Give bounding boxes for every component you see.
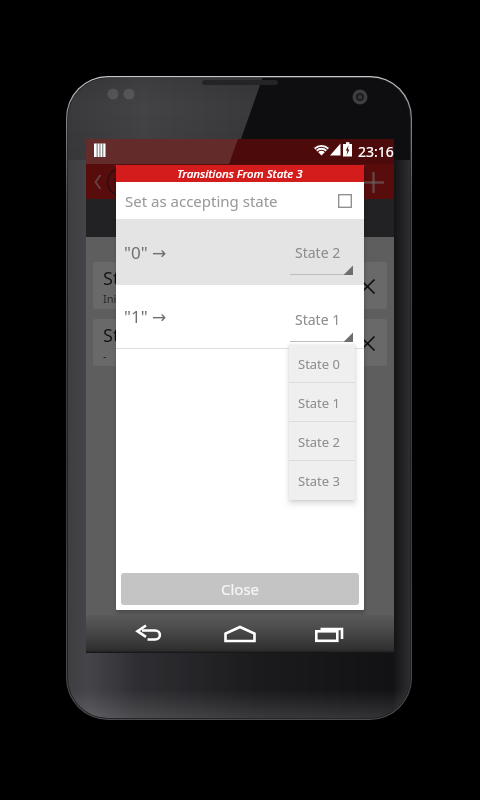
staticText: State 2 [298,433,340,451]
button[interactable]: State 1 [289,383,355,422]
staticText: 23:16 [358,142,394,161]
button[interactable]: State 3 [289,461,355,500]
button[interactable]: Set as accepting state [116,182,364,219]
button[interactable]: Back [91,167,105,197]
staticText: State 0 [103,266,162,291]
button[interactable]: Delete state [347,266,387,306]
staticText: State 1 [298,394,340,412]
button[interactable]: Recent apps [308,615,352,653]
button[interactable]: Back [128,615,172,653]
staticText: Transitions From State 3 [177,166,303,182]
staticText: "1" → [124,305,167,328]
button[interactable]: Close [121,573,359,605]
staticText: "0" → [124,241,167,264]
staticText: AUTOMATON [203,210,278,226]
button[interactable]: "1" → [116,285,364,348]
staticText: State 2 [295,243,358,262]
button[interactable]: State 2 [289,422,355,461]
staticText: Initial state [103,291,161,306]
button[interactable]: Delete state [347,323,387,363]
staticText: Close [221,579,260,599]
button[interactable]: Add state [358,167,388,197]
button[interactable]: "0" → [116,219,364,285]
staticText: State 0 [298,355,340,373]
button[interactable]: State 0 [289,345,355,383]
staticText: - [103,348,107,363]
staticText: State 1 [103,323,162,348]
staticText: Set as accepting state [125,191,278,211]
staticText: State 3 [298,472,340,490]
staticText: State 1 [295,310,358,329]
button[interactable]: Home [218,615,262,653]
button[interactable]: State 0 [93,262,387,309]
staticText: S0 [113,172,130,192]
button[interactable]: State 1 [93,319,387,366]
